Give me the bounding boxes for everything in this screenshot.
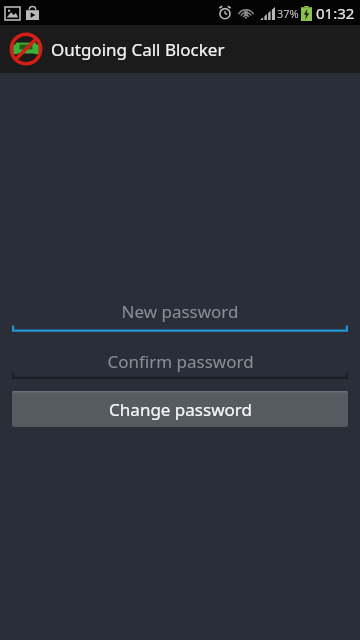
staticText: 01:32 <box>316 3 355 23</box>
staticText: New password <box>121 300 239 323</box>
staticText: 37% <box>277 6 299 21</box>
staticText: Confirm password <box>107 350 254 373</box>
button[interactable]: Confirm password <box>12 347 348 375</box>
staticText: Outgoing Call Blocker <box>51 38 225 61</box>
button[interactable]: Change password <box>12 391 348 427</box>
button[interactable]: New password <box>12 295 348 328</box>
staticText: Change password <box>109 398 252 421</box>
